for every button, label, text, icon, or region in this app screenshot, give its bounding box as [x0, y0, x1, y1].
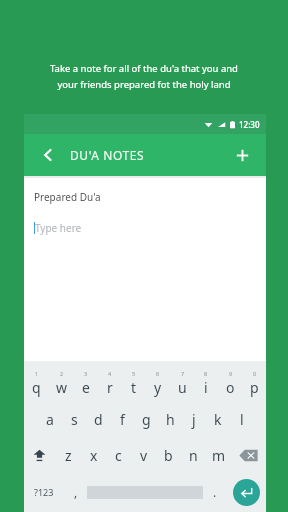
staticText: f	[120, 410, 125, 429]
staticText: h	[166, 410, 175, 429]
button[interactable]: d	[86, 401, 110, 437]
staticText: s	[71, 410, 78, 429]
button[interactable]: 9	[218, 365, 242, 401]
button[interactable]: .	[203, 473, 226, 511]
staticText: 6	[156, 370, 160, 377]
staticText: 2	[60, 370, 64, 377]
staticText: l	[240, 410, 244, 429]
button[interactable]: Enter	[226, 473, 266, 511]
button[interactable]: x	[81, 437, 106, 473]
button[interactable]: j	[182, 401, 206, 437]
staticText: 7	[181, 370, 185, 377]
button[interactable]: 0	[242, 365, 266, 401]
staticText: i	[204, 378, 208, 397]
staticText: n	[189, 446, 198, 465]
staticText: j	[192, 410, 196, 429]
staticText: 12:30	[239, 119, 260, 130]
staticText: w	[56, 378, 68, 397]
button[interactable]: Back	[32, 139, 64, 171]
button[interactable]: 2	[49, 365, 74, 401]
staticText: u	[178, 378, 187, 397]
button[interactable]: m	[206, 437, 231, 473]
staticText: Take a note for all of the du'a that you…	[50, 62, 238, 75]
staticText: g	[142, 410, 151, 429]
staticText: 4	[108, 370, 112, 377]
staticText: b	[164, 446, 173, 465]
button[interactable]: 5	[122, 365, 146, 401]
staticText: 1	[35, 370, 39, 377]
staticText: z	[65, 446, 72, 465]
staticText: q	[32, 378, 41, 397]
button[interactable]: Add note	[226, 139, 258, 171]
staticText: x	[90, 446, 98, 465]
staticText: d	[94, 410, 103, 429]
staticText: r	[107, 378, 113, 397]
staticText: a	[46, 410, 54, 429]
staticText: 0	[253, 370, 257, 377]
staticText: k	[214, 410, 222, 429]
button[interactable]: c	[106, 437, 131, 473]
button[interactable]: n	[181, 437, 206, 473]
button[interactable]: ,	[64, 473, 87, 511]
button[interactable]: ?123	[24, 473, 64, 511]
staticText: 9	[229, 370, 233, 377]
button[interactable]: 3	[74, 365, 98, 401]
button[interactable]: 8	[194, 365, 218, 401]
staticText: t	[131, 378, 137, 397]
button[interactable]: z	[55, 437, 81, 473]
staticText: y	[154, 378, 162, 397]
staticText: 8	[204, 370, 208, 377]
staticText: m	[212, 446, 226, 465]
button[interactable]: s	[62, 401, 86, 437]
staticText: .	[213, 484, 217, 500]
button[interactable]: l	[230, 401, 254, 437]
staticText: v	[140, 446, 148, 465]
staticText: p	[250, 378, 259, 397]
button[interactable]: 1	[24, 365, 49, 401]
staticText: DU'A NOTES	[70, 147, 145, 163]
button[interactable]: a	[37, 401, 62, 437]
button[interactable]: Space	[87, 473, 203, 511]
button[interactable]: g	[134, 401, 158, 437]
staticText: 3	[84, 370, 88, 377]
button[interactable]: 4	[98, 365, 122, 401]
button[interactable]: Prepared Du'a	[34, 190, 101, 204]
button[interactable]: k	[206, 401, 230, 437]
staticText: your friends prepared fot the holy land	[57, 78, 231, 91]
button[interactable]: Backspace	[231, 437, 266, 473]
staticText: 5	[132, 370, 136, 377]
button[interactable]: f	[110, 401, 134, 437]
staticText: ,	[74, 484, 78, 500]
button[interactable]: h	[158, 401, 182, 437]
button[interactable]: v	[131, 437, 156, 473]
button[interactable]: 6	[146, 365, 170, 401]
button[interactable]: Type here	[35, 221, 82, 235]
button[interactable]: b	[156, 437, 181, 473]
button[interactable]: Shift	[24, 437, 55, 473]
button[interactable]: 7	[170, 365, 194, 401]
staticText: e	[82, 378, 90, 397]
staticText: o	[226, 378, 235, 397]
staticText: c	[115, 446, 122, 465]
staticText: ?123	[34, 486, 54, 498]
